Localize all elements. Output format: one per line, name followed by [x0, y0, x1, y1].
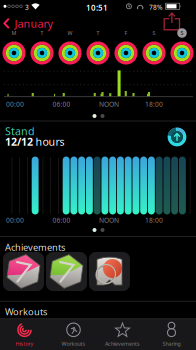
- button[interactable]: Wednesday: [58, 41, 82, 65]
- staticText: 18:00: [145, 100, 163, 109]
- staticText: T: [96, 29, 99, 37]
- staticText: Workouts: [61, 340, 85, 347]
- button[interactable]: Achievements: [98, 319, 147, 350]
- staticText: 00:00: [6, 216, 24, 225]
- button[interactable]: January: [0, 0, 49, 14]
- staticText: History: [15, 340, 33, 347]
- button[interactable]: New Move Goal badge: [89, 252, 130, 291]
- staticText: Stand: [5, 124, 35, 138]
- staticText: January: [14, 16, 52, 31]
- staticText: 3: [25, 3, 29, 12]
- staticText: F: [124, 29, 127, 37]
- staticText: 00:00: [6, 100, 24, 109]
- button[interactable]: Sharing: [147, 319, 196, 350]
- staticText: W: [67, 29, 72, 37]
- staticText: 06:00: [52, 216, 70, 225]
- staticText: S: [180, 29, 183, 37]
- button[interactable]: Perfect Week Move badge: [3, 252, 44, 291]
- button[interactable]: Perfect Week Exercise badge: [46, 252, 87, 291]
- button[interactable]: History: [0, 319, 49, 350]
- button[interactable]: Friday: [114, 41, 138, 65]
- staticText: 06:00: [52, 100, 70, 109]
- button[interactable]: Sunday: [170, 41, 194, 65]
- staticText: NOON: [99, 216, 119, 225]
- staticText: 18:00: [145, 216, 163, 225]
- button[interactable]: Stand detail: [166, 126, 188, 148]
- staticText: Workouts: [5, 305, 47, 318]
- staticText: 10:51: [86, 2, 108, 13]
- staticText: M: [11, 29, 16, 37]
- staticText: Sharing: [162, 340, 180, 347]
- button[interactable]: Saturday: [142, 41, 166, 65]
- staticText: NOON: [99, 100, 119, 109]
- staticText: hours: [35, 134, 64, 149]
- button[interactable]: Share: [0, 0, 17, 18]
- button[interactable]: Thursday: [86, 41, 110, 65]
- staticText: 12/12: [5, 134, 33, 149]
- staticText: Achievements: [5, 241, 65, 253]
- button[interactable]: Tuesday: [30, 41, 54, 65]
- button[interactable]: Monday: [2, 41, 26, 65]
- button[interactable]: Workouts: [49, 319, 98, 350]
- staticText: Achievements: [105, 340, 140, 347]
- staticText: S: [152, 29, 155, 37]
- staticText: 78%: [149, 3, 163, 12]
- staticText: T: [40, 29, 43, 37]
